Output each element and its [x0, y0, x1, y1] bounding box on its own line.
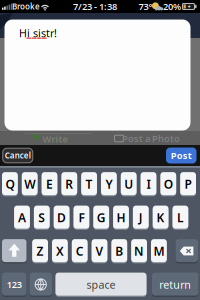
staticText: U — [124, 176, 133, 192]
staticText: Brooke — [12, 1, 40, 12]
button[interactable]: O — [160, 172, 176, 195]
staticText: Q — [5, 176, 14, 192]
button[interactable]: P — [180, 172, 196, 195]
button[interactable]: 123 — [2, 273, 26, 296]
button[interactable]: S — [34, 206, 50, 229]
button[interactable]: T — [81, 172, 97, 195]
button[interactable]: K — [153, 206, 168, 229]
staticText: P — [185, 176, 192, 192]
staticText: W — [24, 176, 35, 192]
button[interactable]: Shift — [2, 239, 26, 262]
staticText: A — [18, 209, 26, 225]
staticText: R — [65, 176, 73, 192]
button[interactable]: Post — [166, 147, 196, 163]
staticText: C — [76, 243, 84, 259]
button[interactable]: space — [55, 273, 146, 296]
staticText: G — [97, 209, 106, 225]
button[interactable]: B — [111, 239, 127, 262]
staticText: return — [159, 277, 191, 292]
staticText: M — [153, 243, 164, 259]
staticText: O — [164, 176, 173, 192]
staticText: V — [95, 243, 103, 259]
button[interactable]: L — [172, 206, 188, 229]
staticText: 7/23 - 1:38 — [73, 0, 117, 12]
staticText: Write — [42, 133, 67, 145]
staticText: E — [46, 176, 53, 192]
button[interactable]: C — [72, 239, 88, 262]
button[interactable]: Cancel — [3, 148, 33, 163]
button[interactable]: U — [121, 172, 137, 195]
staticText: X — [56, 243, 64, 259]
button[interactable]: Q — [2, 172, 18, 195]
button[interactable]: I — [141, 172, 156, 195]
staticText: Cancel — [5, 150, 31, 161]
staticText: Post a Photo — [122, 132, 180, 145]
button[interactable]: Next keyboard — [29, 273, 52, 296]
button[interactable]: Y — [101, 172, 117, 195]
staticText: Z — [37, 243, 44, 259]
button[interactable]: R — [61, 172, 77, 195]
staticText: Post — [171, 149, 192, 162]
button[interactable]: D — [54, 206, 69, 229]
staticText: space — [86, 277, 115, 292]
staticText: S — [38, 209, 45, 225]
staticText: T — [86, 176, 93, 192]
staticText: Hi sistr! — [19, 26, 57, 40]
button[interactable]: X — [52, 239, 68, 262]
button[interactable]: Z — [32, 239, 48, 262]
button[interactable]: E — [42, 172, 57, 195]
staticText: I — [146, 176, 150, 192]
button[interactable]: M — [151, 239, 167, 262]
staticText: Y — [105, 176, 112, 192]
button[interactable]: return — [152, 273, 198, 296]
button[interactable]: J — [133, 206, 149, 229]
button[interactable]: N — [131, 239, 147, 262]
staticText: 123 — [7, 278, 22, 291]
button[interactable]: F — [73, 206, 89, 229]
staticText: D — [57, 209, 66, 225]
button[interactable]: G — [93, 206, 109, 229]
button[interactable]: A — [14, 206, 30, 229]
staticText: K — [157, 209, 165, 225]
staticText: 73° — [138, 0, 152, 12]
staticText: H — [116, 209, 125, 225]
staticText: B — [115, 243, 123, 259]
staticText: N — [134, 243, 144, 259]
button[interactable]: H — [113, 206, 129, 229]
button[interactable]: W — [22, 172, 38, 195]
button[interactable]: Delete — [175, 239, 198, 262]
staticText: F — [78, 209, 84, 225]
staticText: L — [177, 209, 184, 225]
staticText: 20% — [163, 0, 181, 12]
button[interactable]: V — [92, 239, 107, 262]
staticText: J — [139, 209, 143, 225]
